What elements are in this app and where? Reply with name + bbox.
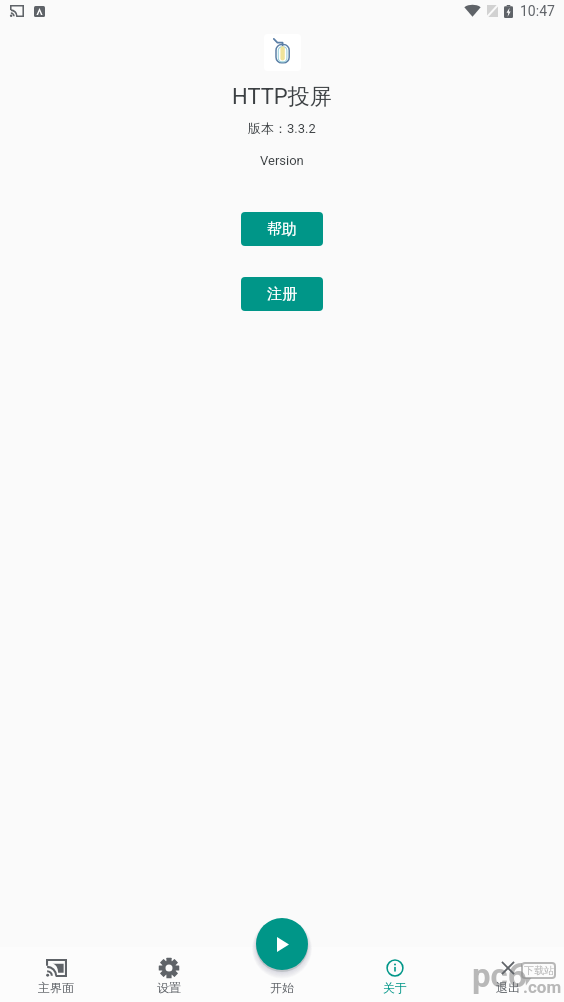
staticText: 主界面 (38, 980, 74, 995)
button[interactable]: 帮助 (241, 212, 323, 246)
staticText: .com (523, 977, 562, 997)
staticText: 下载站 (524, 964, 554, 977)
button[interactable]: Settings (112, 947, 225, 1002)
staticText: 关于 (383, 980, 407, 995)
staticText: 帮助 (267, 220, 297, 239)
staticText: 10:47 (520, 3, 555, 19)
button[interactable]: Start (256, 918, 308, 970)
staticText: 设置 (157, 980, 181, 995)
staticText: 注册 (267, 285, 297, 304)
staticText: 开始 (270, 980, 294, 995)
button[interactable]: Home (0, 947, 112, 1002)
staticText: pc6 (472, 956, 527, 995)
staticText: Version (260, 153, 304, 168)
staticText: HTTP投屏 (232, 83, 332, 111)
button[interactable]: 注册 (241, 277, 323, 311)
button[interactable]: Exit (451, 947, 564, 1002)
button[interactable]: About (338, 947, 451, 1002)
staticText: 退出 (496, 980, 520, 995)
staticText: 版本：3.3.2 (248, 120, 316, 136)
